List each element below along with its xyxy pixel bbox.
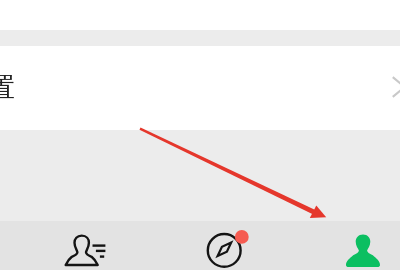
staticText: 置	[0, 71, 15, 104]
button[interactable]: 置	[0, 46, 400, 130]
button[interactable]: Me, selected	[293, 221, 400, 270]
button[interactable]: Discover, 1 new	[154, 221, 294, 270]
button[interactable]: Contacts	[12, 221, 152, 270]
staticText: 置	[0, 71, 15, 104]
